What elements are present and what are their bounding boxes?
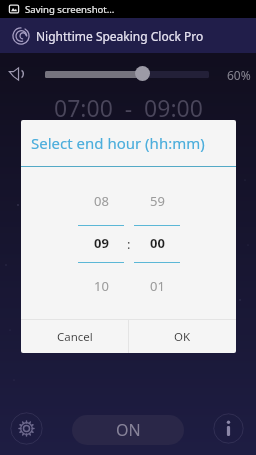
staticText: Cancel [57,329,93,345]
staticText: Nighttime Speaking Clock Pro [36,28,204,44]
staticText: Select end hour (hh:mm) [31,133,205,153]
button[interactable]: Info [213,413,244,444]
button[interactable]: OK [129,320,236,353]
staticText: 08 [94,192,109,210]
button[interactable]: 08 [78,120,124,353]
staticText: Saving screenshot… [25,3,115,16]
staticText: 60% [227,67,251,83]
staticText: 00 [150,234,165,252]
button[interactable]: ON [72,415,184,445]
button[interactable]: Settings [10,412,43,445]
staticText: 09 [94,234,109,252]
button[interactable]: Volume slider [135,66,150,81]
staticText: : [127,235,131,251]
staticText: 07:00 - 09:00 [54,92,203,122]
staticText: 10 [94,277,109,295]
button[interactable]: 59 [134,120,180,353]
staticText: ON [116,419,141,441]
other: App icon [12,27,30,45]
button[interactable]: Cancel [21,320,128,353]
other: Volume [9,67,26,81]
staticText: 01 [150,277,165,295]
staticText: OK [174,329,191,345]
staticText: 59 [150,192,165,210]
